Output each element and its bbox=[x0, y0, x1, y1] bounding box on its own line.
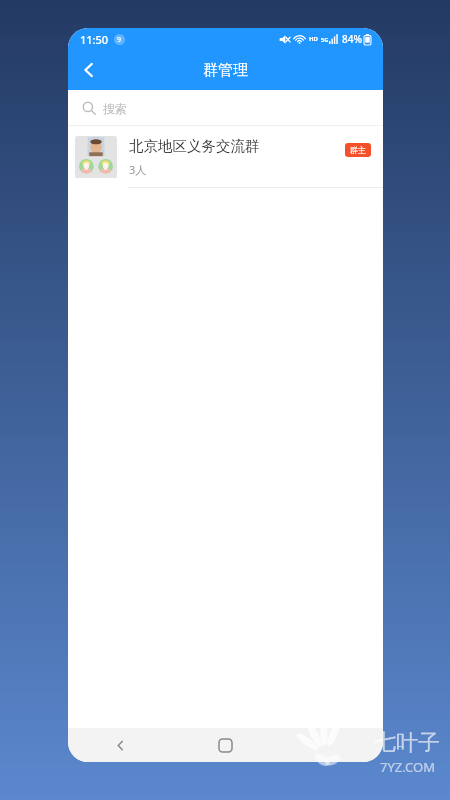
staticText: 北京地区义务交流群 bbox=[129, 137, 260, 155]
button[interactable]: 北京地区义务交流群 bbox=[68, 126, 383, 188]
button[interactable]: Back bbox=[68, 50, 110, 90]
staticText: 11:50 bbox=[80, 32, 109, 47]
button[interactable]: Home bbox=[173, 728, 278, 762]
staticText: 搜索 bbox=[103, 101, 127, 116]
staticText: 群管理 bbox=[203, 61, 248, 80]
button[interactable]: Back bbox=[68, 728, 173, 762]
button[interactable]: Recents bbox=[278, 728, 383, 762]
staticText: 3人 bbox=[129, 162, 147, 177]
staticText: 9 bbox=[117, 35, 122, 45]
staticText: 5G bbox=[321, 36, 329, 43]
button[interactable]: 搜索 bbox=[68, 90, 383, 126]
staticText: HD bbox=[309, 35, 318, 43]
staticText: 7YZ.COM bbox=[380, 758, 435, 776]
staticText: 84% bbox=[342, 32, 362, 46]
staticText: 群主 bbox=[350, 145, 366, 155]
staticText: 七叶子 bbox=[374, 729, 440, 757]
